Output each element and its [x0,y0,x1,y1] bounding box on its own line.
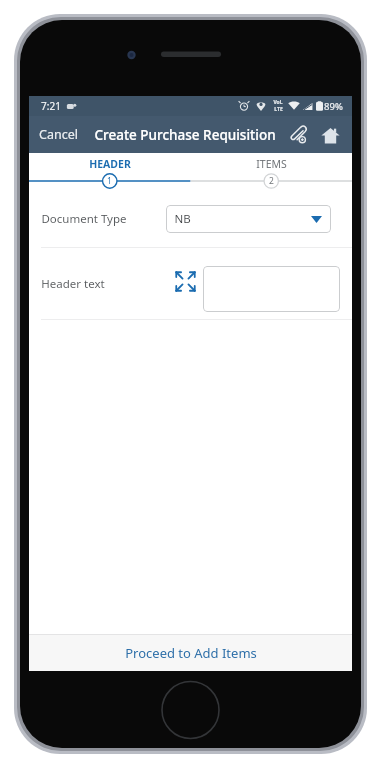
button[interactable]: HEADER [29,153,190,191]
staticText: 1 [107,175,112,187]
staticText: LTE [274,106,283,113]
staticText: NB [174,211,191,227]
button[interactable]: ITEMS [190,153,352,191]
staticText: Proceed to Add Items [125,644,257,662]
staticText: 2 [269,175,274,187]
button[interactable]: Add attachment [284,121,312,149]
button[interactable]: Expand header text [173,269,197,293]
staticText: Create Purchase Requisition [94,126,276,144]
staticText: Cancel [39,126,78,143]
button[interactable]: Document Type [29,191,352,247]
button[interactable]: Header text [29,248,352,319]
button[interactable]: Cancel [29,116,88,153]
staticText: HEADER [89,157,131,171]
staticText: Document Type [41,211,127,227]
staticText: VoL [273,99,283,106]
button[interactable]: Proceed to Add Items [29,635,352,671]
button[interactable]: Home [316,121,344,149]
button[interactable] [203,266,340,312]
staticText: 89% [324,100,343,113]
staticText: ITEMS [256,157,287,171]
staticText: Header text [41,276,105,292]
staticText: 7:21 [41,99,61,113]
